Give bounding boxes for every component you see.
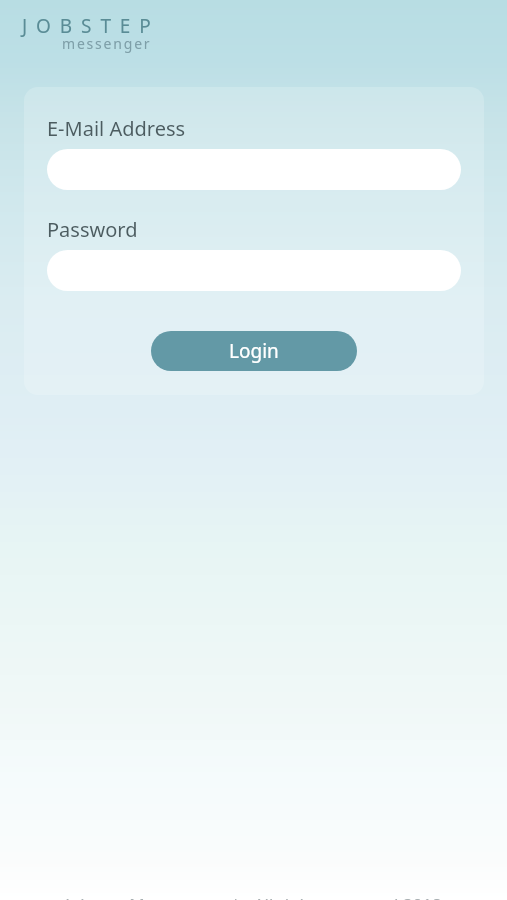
- staticText: JOBSTEP: [22, 13, 160, 39]
- button[interactable]: Password input: [47, 250, 461, 291]
- staticText: Password: [47, 216, 138, 243]
- button[interactable]: Login: [151, 331, 357, 371]
- staticText: Jobstep Messenger | All rights reserved …: [65, 893, 442, 900]
- staticText: E-Mail Address: [47, 115, 186, 142]
- button[interactable]: E-Mail Address input: [47, 149, 461, 190]
- staticText: Login: [229, 338, 279, 364]
- staticText: messenger: [62, 34, 152, 53]
